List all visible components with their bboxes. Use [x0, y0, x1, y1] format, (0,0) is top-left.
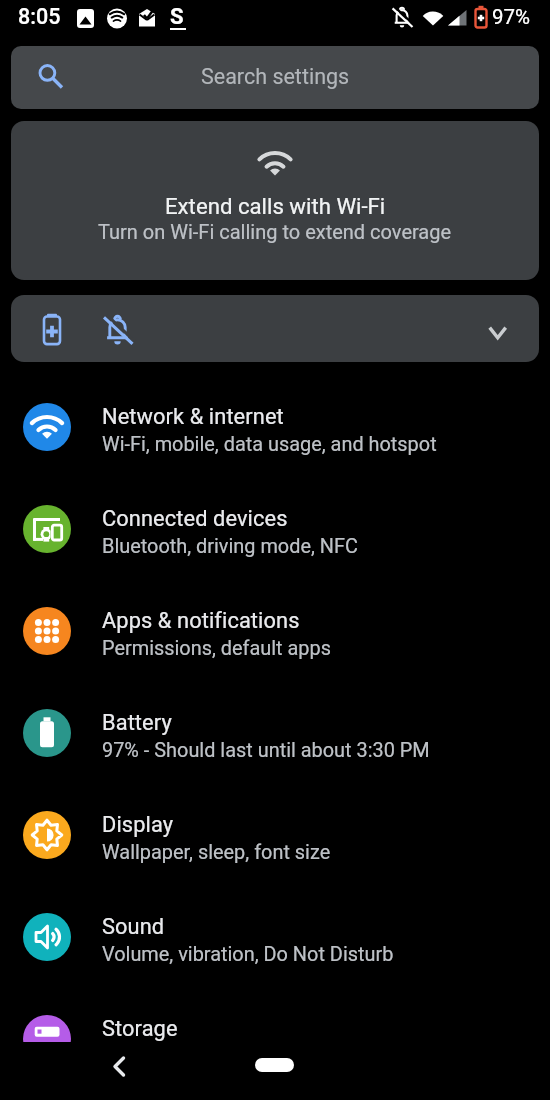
button[interactable]: Apps & notifications	[0, 580, 550, 682]
staticText: Network & internet	[102, 404, 284, 430]
staticText: Volume, vibration, Do Not Disturb	[102, 943, 394, 966]
staticText: 8:05	[18, 4, 61, 29]
button[interactable]: Sound	[0, 886, 550, 988]
staticText: 97% - Should last until about 3:30 PM	[102, 739, 430, 762]
button[interactable]	[255, 1058, 294, 1072]
staticText: Connected devices	[102, 506, 288, 532]
button[interactable]: Storage	[0, 988, 550, 1090]
staticText: Search settings	[201, 64, 350, 89]
staticText: 11% used - 57.14 GB free	[102, 1045, 323, 1068]
staticText: Display	[102, 812, 174, 838]
staticText: Sound	[102, 914, 165, 940]
button[interactable]: Network & internet	[0, 376, 550, 478]
button[interactable]: Connected devices	[0, 478, 550, 580]
button[interactable]	[11, 295, 539, 362]
button[interactable]: Battery	[0, 682, 550, 784]
staticText: Bluetooth, driving mode, NFC	[102, 535, 358, 558]
button[interactable]: Search settings	[11, 46, 539, 109]
staticText: Turn on Wi-Fi calling to extend coverage	[98, 220, 452, 243]
staticText: Wallpaper, sleep, font size	[102, 841, 331, 864]
staticText: Battery	[102, 710, 172, 736]
staticText: Storage	[102, 1016, 178, 1042]
button[interactable]: Display	[0, 784, 550, 886]
staticText: S	[170, 4, 184, 30]
staticText: Permissions, default apps	[102, 637, 331, 660]
button[interactable]	[100, 1045, 140, 1085]
staticText: Apps & notifications	[102, 608, 300, 634]
staticText: Wi-Fi, mobile, data usage, and hotspot	[102, 433, 437, 456]
button[interactable]: Extend calls with Wi-Fi	[11, 121, 539, 280]
staticText: 97%	[492, 5, 531, 29]
staticText: Extend calls with Wi-Fi	[165, 193, 386, 219]
